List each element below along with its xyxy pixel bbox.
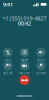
button[interactable]: audio <box>33 47 49 61</box>
staticText: +1 (555) 019-4827 <box>2 15 46 22</box>
button[interactable]: contacts <box>33 61 49 75</box>
button[interactable]: mute <box>0 47 16 61</box>
staticText: 00:42 <box>18 20 31 27</box>
staticText: add call <box>3 71 13 75</box>
staticText: audio <box>37 58 45 61</box>
staticText: FaceTime <box>19 71 30 75</box>
staticText: keypad <box>20 58 28 61</box>
staticText: mute <box>4 58 11 61</box>
button[interactable]: FaceTime <box>16 61 32 75</box>
staticText: 9:41 <box>3 1 13 8</box>
button[interactable]: keypad <box>16 47 32 61</box>
staticText: contacts <box>36 71 46 75</box>
button[interactable]: End call <box>18 74 30 86</box>
button[interactable]: add call <box>0 61 16 75</box>
